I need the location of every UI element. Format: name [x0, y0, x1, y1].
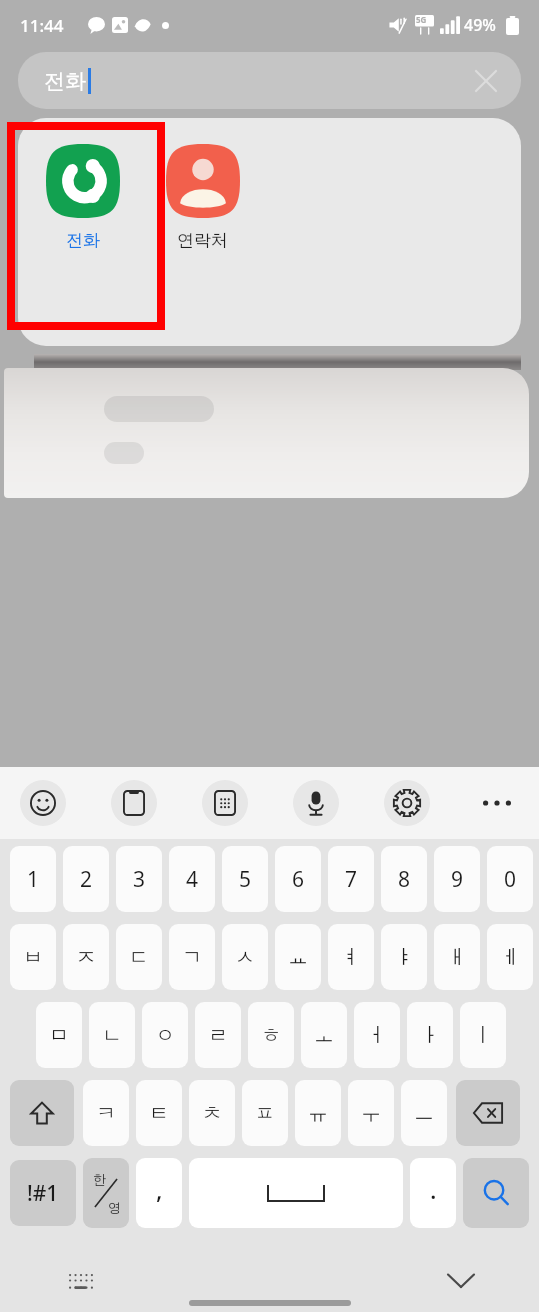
staticText: 0	[504, 865, 517, 894]
button[interactable]: Backspace	[456, 1080, 520, 1146]
staticText: ㅎ	[261, 1023, 281, 1048]
button[interactable]: Clear search	[469, 64, 503, 98]
button[interactable]: ㄹ	[195, 1002, 241, 1068]
button[interactable]: ㅐ	[434, 924, 480, 990]
staticText: ㅅ	[235, 945, 255, 970]
button[interactable]: Keyboard modes	[202, 780, 248, 826]
staticText: ㅊ	[202, 1101, 222, 1126]
staticText: 6	[292, 865, 305, 894]
button[interactable]: 0	[487, 846, 533, 912]
staticText: ㅜ	[361, 1101, 381, 1126]
button[interactable]: ㅈ	[63, 924, 109, 990]
staticText: ㅛ	[288, 945, 308, 970]
button[interactable]: Emoji	[20, 780, 66, 826]
button[interactable]: 1	[10, 846, 56, 912]
button[interactable]: ㅔ	[487, 924, 533, 990]
staticText: 전화	[66, 230, 100, 251]
button[interactable]: 2	[63, 846, 109, 912]
button[interactable]: ㅡ	[401, 1080, 447, 1146]
button[interactable]: 전화	[18, 52, 521, 109]
button[interactable]: Space	[189, 1158, 403, 1228]
button[interactable]: ,	[136, 1158, 182, 1228]
button[interactable]: 8	[381, 846, 427, 912]
button[interactable]: 연락처	[141, 142, 264, 251]
button[interactable]: ㅌ	[136, 1080, 182, 1146]
button[interactable]: Search	[463, 1158, 529, 1228]
staticText: ㄹ	[208, 1023, 228, 1048]
button[interactable]: ㄷ	[116, 924, 162, 990]
staticText: ㄴ	[102, 1023, 122, 1048]
button[interactable]: ㅏ	[407, 1002, 453, 1068]
button[interactable]: Clipboard	[111, 780, 157, 826]
button[interactable]: 9	[434, 846, 480, 912]
button[interactable]: 전화	[24, 142, 141, 251]
button[interactable]: Korean English toggle	[83, 1158, 129, 1228]
staticText: ㄷ	[129, 945, 149, 970]
staticText: 2	[80, 865, 93, 894]
button[interactable]: 6	[275, 846, 321, 912]
staticText: 연락처	[177, 230, 228, 251]
staticText: 3	[133, 865, 146, 894]
button[interactable]: 3	[116, 846, 162, 912]
staticText: .	[430, 1173, 437, 1206]
staticText: 11:44	[20, 14, 64, 37]
button[interactable]: ㅁ	[36, 1002, 82, 1068]
staticText: ㅗ	[314, 1023, 334, 1048]
button[interactable]: ㅎ	[248, 1002, 294, 1068]
staticText: ㅂ	[23, 945, 43, 970]
staticText: ㅋ	[96, 1101, 116, 1126]
staticText: ㅕ	[341, 945, 361, 970]
button[interactable]: 4	[169, 846, 215, 912]
button[interactable]: ㅣ	[460, 1002, 506, 1068]
staticText: ,	[156, 1173, 163, 1206]
staticText: ㅣ	[473, 1023, 493, 1048]
button[interactable]: ㅇ	[142, 1002, 188, 1068]
staticText: 5G	[416, 14, 427, 25]
button[interactable]: ㅠ	[295, 1080, 341, 1146]
button[interactable]: ㅍ	[242, 1080, 288, 1146]
staticText: ㅠ	[308, 1101, 328, 1126]
staticText: 8	[398, 865, 411, 894]
button[interactable]: More options	[475, 781, 519, 825]
staticText: 9	[451, 865, 464, 894]
button[interactable]: Change keyboard	[62, 1261, 100, 1299]
button[interactable]: Hide keyboard	[440, 1259, 482, 1301]
button[interactable]: ㅊ	[189, 1080, 235, 1146]
button[interactable]: 7	[328, 846, 374, 912]
staticText: ㅏ	[420, 1023, 440, 1048]
button[interactable]: ㅛ	[275, 924, 321, 990]
button[interactable]: ㅕ	[328, 924, 374, 990]
staticText: ㅈ	[76, 945, 96, 970]
button[interactable]: .	[410, 1158, 456, 1228]
button[interactable]: ㅗ	[301, 1002, 347, 1068]
button[interactable]: ㄱ	[169, 924, 215, 990]
staticText: 1	[27, 865, 40, 894]
staticText: 5	[239, 865, 252, 894]
button[interactable]: Voice input	[293, 780, 339, 826]
staticText: ㅐ	[447, 945, 467, 970]
staticText: 영	[108, 1199, 121, 1215]
staticText: ㅔ	[500, 945, 520, 970]
button[interactable]: ㅂ	[10, 924, 56, 990]
staticText: ㅡ	[414, 1101, 434, 1126]
button[interactable]: ㅋ	[83, 1080, 129, 1146]
button[interactable]: Keyboard settings	[384, 780, 430, 826]
button[interactable]: ㅓ	[354, 1002, 400, 1068]
staticText: 49%	[464, 14, 496, 36]
button[interactable]: 5	[222, 846, 268, 912]
button[interactable]: ㅅ	[222, 924, 268, 990]
button[interactable]: ㅑ	[381, 924, 427, 990]
staticText: ㅓ	[367, 1023, 387, 1048]
button[interactable]: ㅜ	[348, 1080, 394, 1146]
button[interactable]: ㄴ	[89, 1002, 135, 1068]
button[interactable]: Shift	[10, 1080, 74, 1146]
button[interactable]: !#1	[10, 1160, 76, 1226]
staticText: ㅁ	[49, 1023, 69, 1048]
staticText: ㄱ	[182, 945, 202, 970]
staticText: 전화	[44, 68, 86, 94]
staticText: 4	[186, 865, 199, 894]
staticText: 한	[93, 1171, 106, 1187]
staticText: ㅇ	[155, 1023, 175, 1048]
staticText: !#1	[27, 1179, 59, 1208]
staticText: ㅑ	[394, 945, 414, 970]
